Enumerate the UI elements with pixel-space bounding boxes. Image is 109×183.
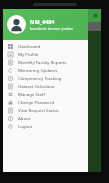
staticText: Logout [18,123,33,129]
button[interactable]: My Profile [3,50,88,58]
button[interactable]: View Request Status [3,106,88,114]
staticText: NM_4484 [30,18,55,25]
button[interactable]: Logout [3,122,88,130]
button[interactable]: Change Password [3,98,88,106]
staticText: Monthly Facility Reports [18,59,67,65]
button[interactable]: Competency Tracking [3,74,88,82]
button[interactable]: Notifications [93,13,98,18]
button[interactable]: NM_4484 [3,9,88,40]
button[interactable]: Monthly Facility Reports [3,58,88,66]
button[interactable]: About [3,114,88,122]
button[interactable]: Dashboard [3,42,88,50]
staticText: Mentoring Updates [18,67,58,73]
staticText: My Profile [18,51,39,57]
button[interactable]: Dataset Calculator [3,82,88,90]
staticText: Competency Tracking [18,75,62,81]
button[interactable]: Manage Staff [3,90,88,98]
staticText: Dataset Calculator [18,83,56,89]
staticText: kamlesh kumar yadav [30,26,74,32]
button[interactable]: Mentoring Updates [3,66,88,74]
staticText: Dashboard [18,43,41,49]
staticText: Change Password [18,99,55,105]
staticText: Manage Staff [18,91,45,97]
staticText: About [18,115,31,121]
staticText: View Request Status [18,107,59,113]
